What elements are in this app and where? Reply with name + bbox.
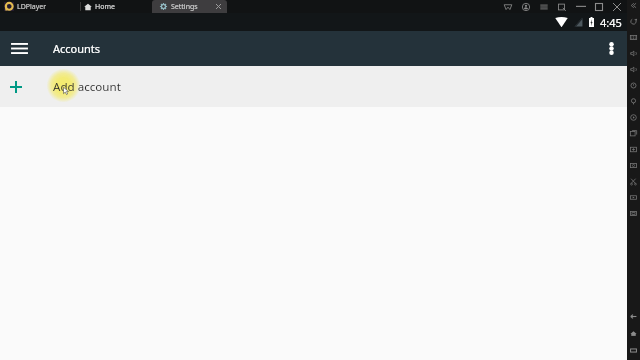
button[interactable]: Open navigation drawer: [5, 34, 34, 63]
button[interactable]: Close Settings tab: [213, 1, 224, 12]
button[interactable]: Volume up: [627, 45, 640, 61]
button[interactable]: Close: [608, 0, 626, 13]
staticText: LDPlayer: [17, 2, 47, 12]
button[interactable]: Volume down: [627, 61, 640, 77]
staticText: Add account: [53, 79, 121, 95]
button[interactable]: Home: [82, 0, 122, 13]
button[interactable]: Full screen: [627, 205, 640, 221]
button[interactable]: Install APK: [627, 141, 640, 157]
button[interactable]: Home: [627, 325, 640, 342]
button[interactable]: Back: [627, 308, 640, 325]
button[interactable]: Video record: [627, 189, 640, 205]
button[interactable]: Record macro: [627, 109, 640, 125]
button[interactable]: Settings: [152, 0, 227, 13]
button[interactable]: Screenshot: [553, 0, 571, 13]
staticText: 4:45: [600, 15, 622, 30]
button[interactable]: Maximize: [590, 0, 608, 13]
button[interactable]: Screenshot: [627, 157, 640, 173]
button[interactable]: Keyboard mapping: [627, 29, 640, 45]
button[interactable]: Game controls: [499, 0, 517, 13]
staticText: Home: [95, 2, 115, 12]
staticText: Accounts: [53, 41, 101, 56]
button[interactable]: Rotate screen: [627, 13, 640, 29]
button[interactable]: Shake: [627, 77, 640, 93]
button[interactable]: Recent apps: [627, 342, 640, 359]
staticText: Settings: [171, 2, 198, 12]
button[interactable]: Add account: [0, 66, 627, 107]
button[interactable]: Location: [627, 93, 640, 109]
button[interactable]: Multi instance: [627, 125, 640, 141]
button[interactable]: Menu: [535, 0, 553, 13]
button[interactable]: More options: [597, 35, 625, 63]
button[interactable]: Minimize: [572, 0, 590, 13]
button[interactable]: Account: [517, 0, 535, 13]
button[interactable]: Scissors: [627, 173, 640, 189]
button[interactable]: Collapse sidebar: [627, 0, 640, 13]
